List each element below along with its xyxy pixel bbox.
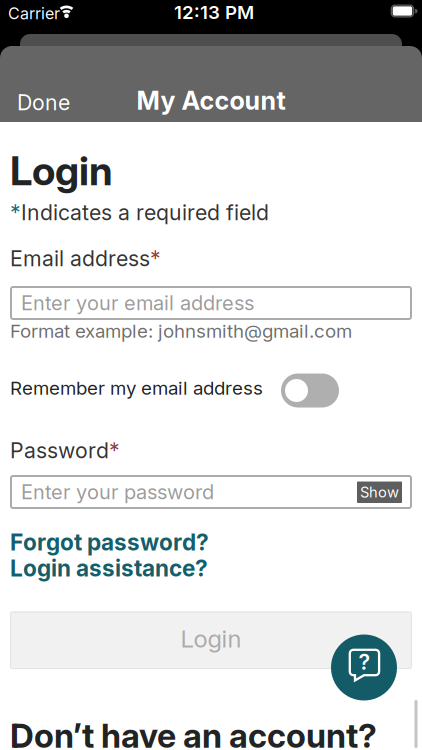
staticText: Format example: johnsmith@gmail.com	[10, 320, 352, 342]
staticText: Enter your password	[21, 480, 214, 504]
staticText: Login	[10, 147, 113, 194]
staticText: *	[109, 438, 120, 463]
button[interactable]: Password	[10, 475, 412, 509]
button[interactable]: Login assistance?	[10, 555, 208, 582]
staticText: Email address	[10, 246, 150, 271]
staticText: Remember my email address	[10, 377, 263, 399]
staticText: Indicates a required field	[21, 200, 269, 225]
button[interactable]: Done	[11, 86, 76, 119]
staticText: Done	[17, 90, 70, 115]
staticText: Login assistance?	[10, 555, 208, 582]
staticText: Don’t have an account?	[10, 716, 377, 750]
staticText: 12:13 PM	[174, 1, 254, 23]
staticText: Login	[180, 625, 241, 653]
staticText: Forgot password?	[10, 529, 209, 556]
button[interactable]: Email address	[10, 286, 412, 320]
button[interactable]: Help chat	[331, 634, 397, 700]
staticText: My Account	[136, 86, 285, 115]
button[interactable]: Forgot password?	[10, 529, 209, 556]
staticText: Carrier	[8, 4, 60, 23]
staticText: *	[10, 200, 21, 225]
button[interactable]: Remember my email address	[281, 373, 339, 407]
staticText: ?	[358, 649, 370, 675]
button[interactable]: Login	[10, 611, 412, 669]
staticText: Show	[360, 484, 399, 501]
button[interactable]: Show	[357, 481, 402, 503]
staticText: *	[150, 246, 161, 271]
staticText: Enter your email address	[21, 291, 254, 315]
staticText: Password	[10, 438, 109, 463]
